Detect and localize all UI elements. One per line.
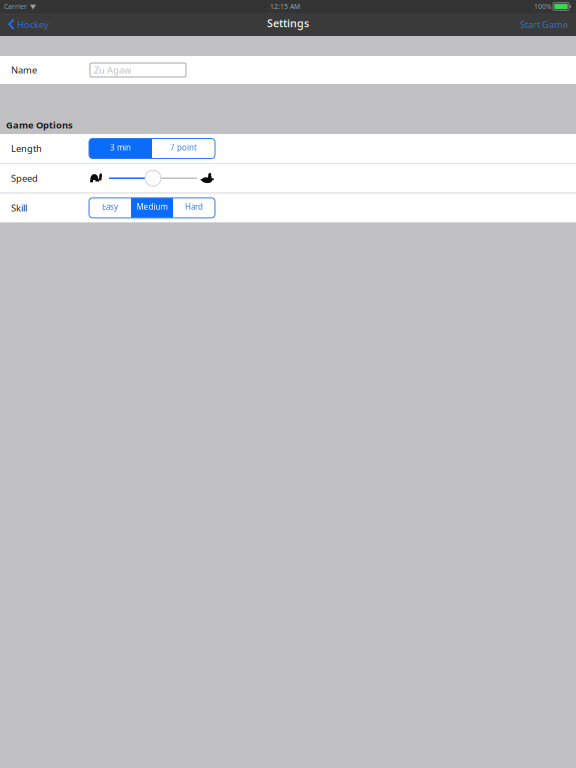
button[interactable]: 3 min <box>89 138 152 158</box>
button[interactable]: 7 point <box>152 138 215 158</box>
staticText: 7 point <box>170 142 197 153</box>
button[interactable]: Zu Agaw <box>90 63 186 77</box>
button[interactable]: Easy <box>89 198 131 218</box>
button[interactable]: Hockey <box>0 12 57 36</box>
staticText: Hard <box>185 201 203 212</box>
button[interactable]: Hard <box>173 198 215 218</box>
staticText: 100% <box>534 2 552 11</box>
staticText: Name <box>11 64 37 76</box>
staticText: Game Options <box>6 119 73 131</box>
button[interactable]: Start Game <box>512 12 576 36</box>
staticText: Zu Agaw <box>94 64 131 76</box>
staticText: 12:15 AM <box>270 2 300 11</box>
staticText: Easy <box>102 201 118 212</box>
staticText: Medium <box>136 201 167 212</box>
staticText: Speed <box>11 172 38 184</box>
staticText: Hockey <box>17 18 49 31</box>
button[interactable]: Medium <box>131 198 173 218</box>
staticText: Skill <box>11 202 27 214</box>
staticText: 3 min <box>110 142 131 153</box>
staticText: Settings <box>267 16 309 30</box>
staticText: Length <box>11 142 42 155</box>
staticText: Carrier <box>4 2 27 11</box>
staticText: Start Game <box>520 18 568 31</box>
